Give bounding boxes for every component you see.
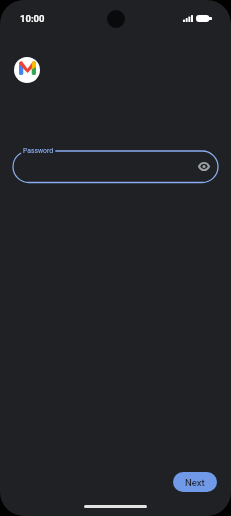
button[interactable]: Gmail — [14, 57, 40, 83]
button[interactable]: Show password — [196, 158, 212, 174]
staticText: 10:00 — [20, 13, 45, 24]
staticText: Next — [185, 477, 205, 488]
button[interactable]: Next — [173, 472, 217, 492]
button[interactable]: Password — [13, 143, 218, 191]
staticText: Password — [23, 147, 54, 155]
